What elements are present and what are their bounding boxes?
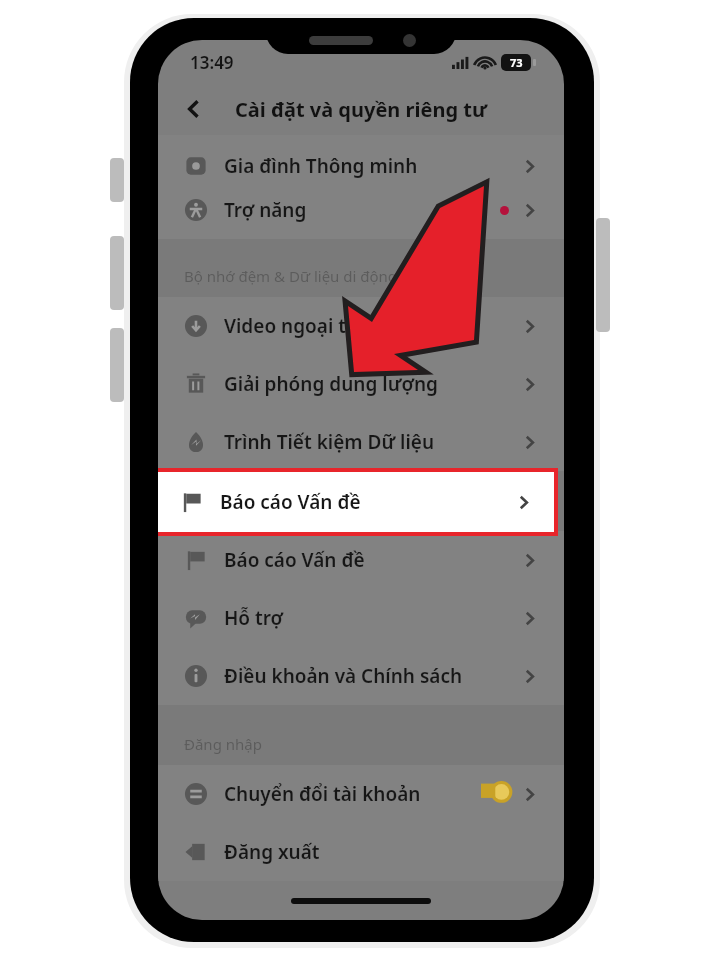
button[interactable]: Chuyển đổi tài khoản bbox=[158, 765, 564, 823]
button[interactable]: Back bbox=[172, 87, 216, 131]
button[interactable]: Báo cáo Vấn đề bbox=[158, 468, 558, 536]
staticText: Trình Tiết kiệm Dữ liệu bbox=[224, 429, 435, 455]
staticText: Trợ năng bbox=[224, 197, 307, 223]
button[interactable]: Báo cáo Vấn đề bbox=[158, 531, 564, 589]
staticText: Báo cáo Vấn đề bbox=[224, 547, 365, 573]
staticText: Hỗ trợ bbox=[224, 605, 284, 631]
staticText: Đăng xuất bbox=[224, 839, 320, 865]
button[interactable]: Video ngoại tuyến bbox=[158, 297, 564, 355]
button[interactable]: Hỗ trợ bbox=[158, 589, 564, 647]
staticText: Chuyển đổi tài khoản bbox=[224, 781, 421, 807]
staticText: 73 bbox=[510, 55, 523, 70]
staticText: 13:49 bbox=[190, 51, 234, 74]
button[interactable]: Trình Tiết kiệm Dữ liệu bbox=[158, 413, 564, 471]
staticText: Bộ nhớ đệm & Dữ liệu di động bbox=[184, 266, 398, 286]
button[interactable]: Điều khoản và Chính sách bbox=[158, 647, 564, 705]
button[interactable]: Giải phóng dung lượng bbox=[158, 355, 564, 413]
staticText: Gia đình Thông minh bbox=[224, 153, 418, 179]
staticText: Báo cáo Vấn đề bbox=[220, 489, 361, 515]
button[interactable]: Đăng xuất bbox=[158, 823, 564, 881]
staticText: Cài đặt và quyền riêng tư bbox=[235, 96, 488, 123]
staticText: Điều khoản và Chính sách bbox=[224, 663, 463, 689]
staticText: Video ngoại tuyến bbox=[224, 313, 392, 339]
staticText: Hỗ trợ & Giới thiệu bbox=[184, 500, 316, 520]
staticText: Đăng nhập bbox=[184, 734, 262, 754]
staticText: Giải phóng dung lượng bbox=[224, 371, 438, 397]
